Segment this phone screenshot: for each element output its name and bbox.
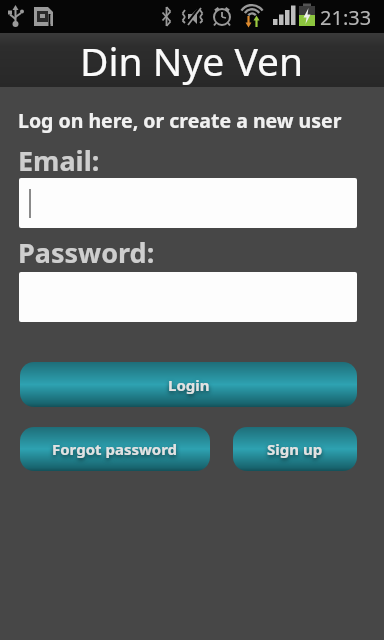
staticText: 21:33 <box>320 4 372 31</box>
staticText: Log on here, or create a new user <box>18 107 342 134</box>
button[interactable]: Login <box>20 362 357 407</box>
staticText: Password: <box>18 234 155 271</box>
staticText: Din Nye Ven <box>80 34 304 87</box>
staticText: Forgot password <box>52 439 178 459</box>
staticText: Email: <box>18 142 100 179</box>
button[interactable] <box>19 178 357 228</box>
staticText: Login <box>168 375 210 395</box>
staticText: Sign up <box>267 439 323 459</box>
button[interactable]: Forgot password <box>20 427 210 471</box>
button[interactable]: Sign up <box>233 427 357 471</box>
